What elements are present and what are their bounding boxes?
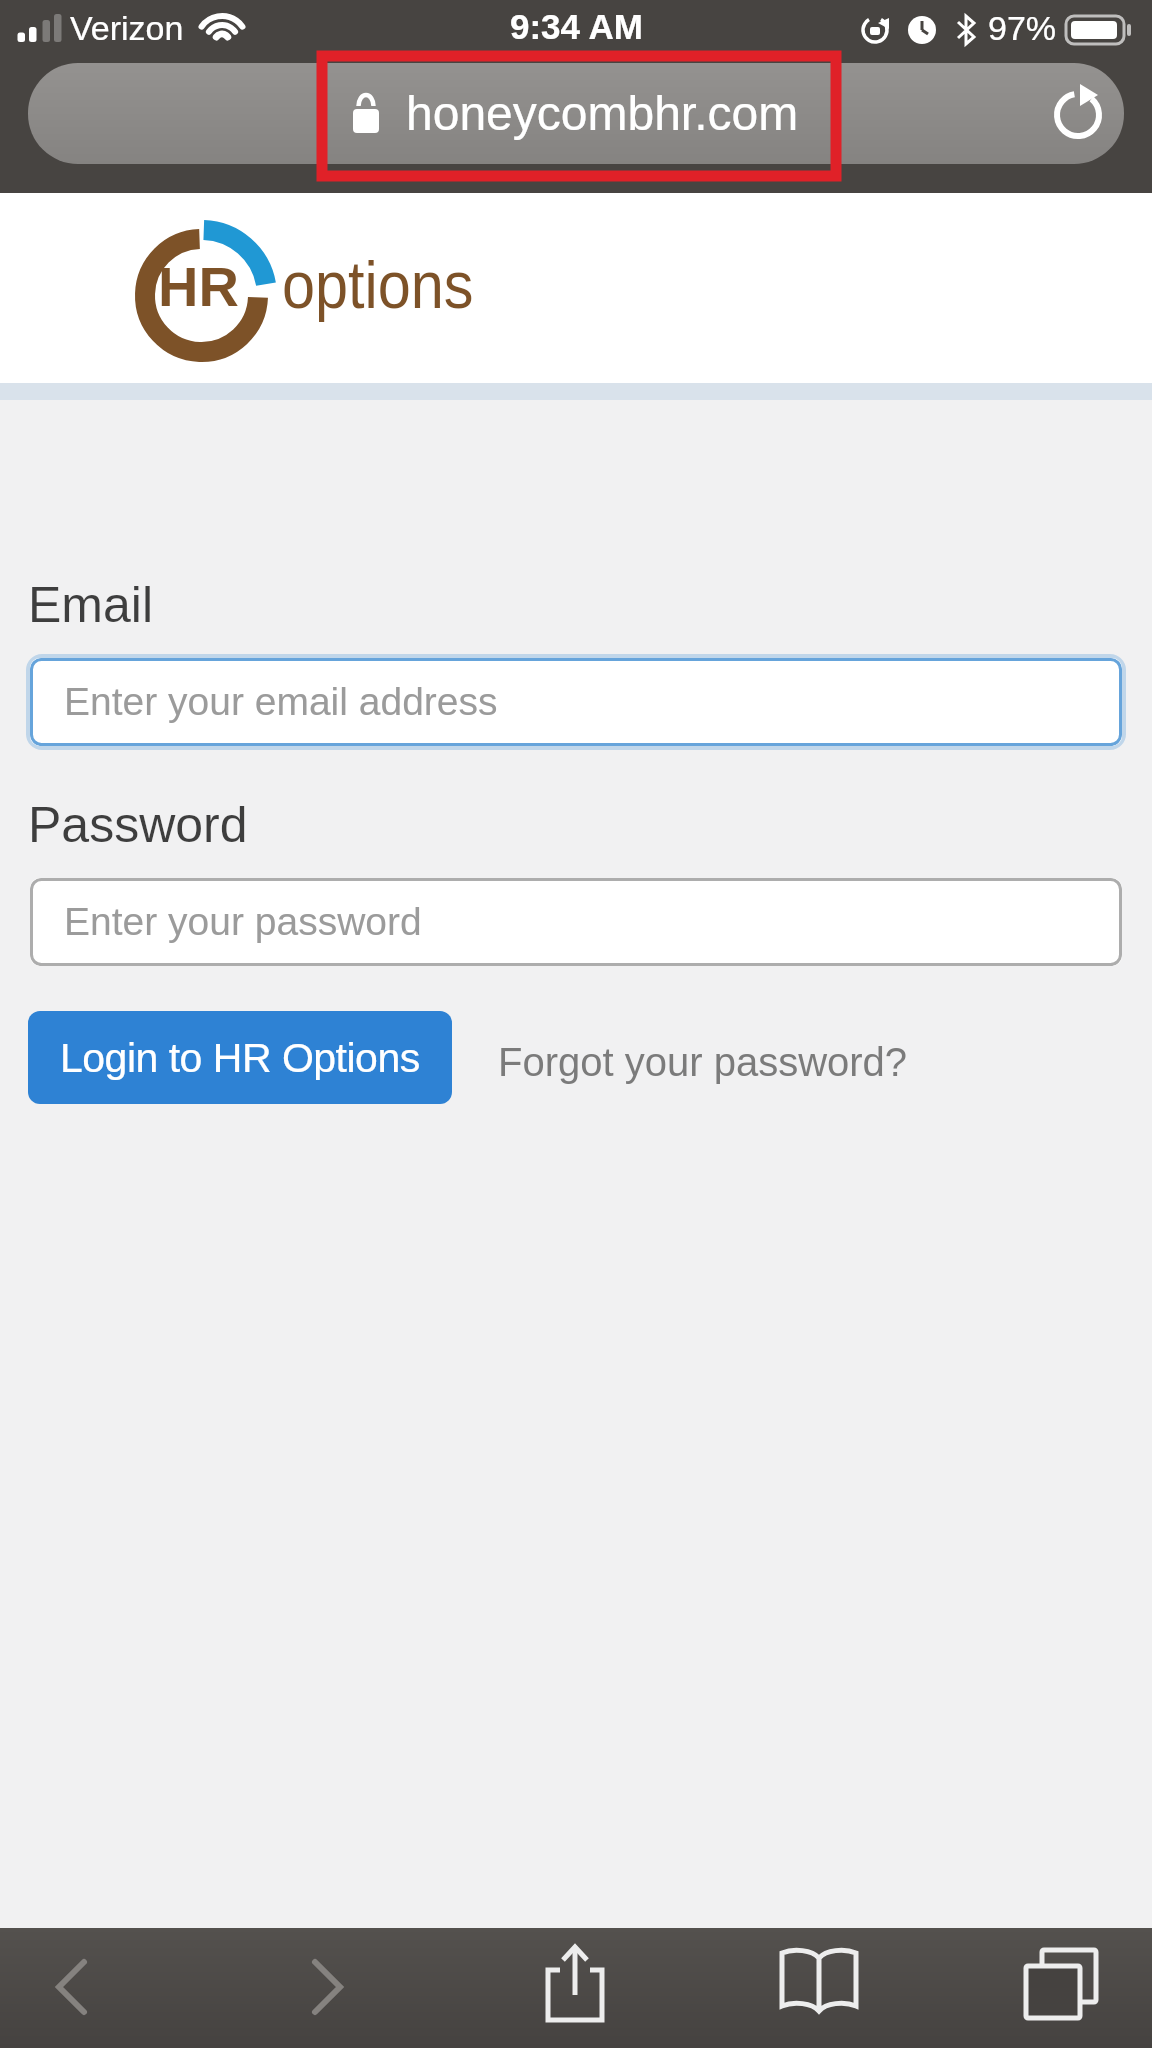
button[interactable]: Login to HR Options — [28, 1011, 452, 1104]
button[interactable]: Enter your email address — [30, 658, 1122, 746]
staticText: honeycombhr.com — [406, 87, 799, 141]
button[interactable]: Forgot your password? — [498, 1023, 908, 1101]
button[interactable]: HR — [0, 193, 1152, 383]
staticText: Password — [28, 797, 248, 853]
staticText: Login to HR Options — [60, 1035, 420, 1081]
staticText: 97% — [988, 9, 1057, 47]
staticText: Forgot your password? — [498, 1040, 908, 1085]
staticText: Verizon — [70, 9, 184, 47]
button[interactable]: Enter your password — [30, 878, 1122, 966]
button[interactable] — [30, 1948, 114, 2032]
button[interactable] — [1046, 82, 1110, 146]
staticText: HR — [158, 255, 239, 318]
staticText: Email — [28, 577, 154, 633]
button[interactable] — [532, 1938, 620, 2038]
staticText: Enter your email address — [64, 680, 498, 724]
button[interactable] — [286, 1948, 370, 2032]
button[interactable] — [774, 1944, 864, 2024]
button[interactable] — [1016, 1946, 1102, 2022]
button[interactable]: honeycombhr.com — [28, 63, 1124, 164]
staticText: 9:34 AM — [510, 7, 643, 46]
staticText: options — [282, 248, 474, 322]
staticText: Enter your password — [64, 900, 422, 944]
